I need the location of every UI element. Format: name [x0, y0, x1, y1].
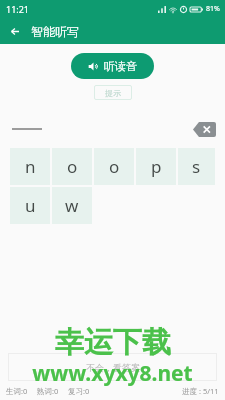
staticText: s: [192, 155, 201, 178]
button[interactable]: o: [52, 148, 92, 185]
staticText: o: [109, 155, 120, 178]
button[interactable]: 听读音: [71, 53, 154, 79]
button[interactable]: s: [178, 148, 215, 185]
staticText: 81%: [206, 4, 220, 14]
button[interactable]: Delete: [193, 122, 216, 137]
button[interactable]: 提示: [94, 85, 132, 100]
staticText: u: [25, 194, 36, 217]
staticText: 听读音: [104, 59, 137, 73]
button[interactable]: u: [10, 187, 50, 224]
button[interactable]: Back: [4, 20, 26, 42]
button[interactable]: p: [136, 148, 176, 185]
staticText: 11:21: [6, 3, 30, 15]
staticText: 幸运下载: [55, 324, 171, 361]
button[interactable]: n: [10, 148, 50, 185]
button[interactable]: w: [52, 187, 92, 224]
staticText: o: [67, 155, 78, 178]
staticText: n: [25, 155, 36, 178]
staticText: www.xyxy8.net: [32, 359, 193, 388]
staticText: 熟词:0: [37, 386, 59, 396]
staticText: 生词:0: [6, 386, 28, 396]
button[interactable]: o: [94, 148, 134, 185]
staticText: w: [65, 194, 79, 217]
staticText: 不会，看答案: [86, 362, 140, 373]
staticText: 提示: [105, 88, 121, 98]
staticText: p: [151, 155, 162, 178]
button[interactable]: 不会，看答案: [8, 353, 217, 381]
staticText: 复习:0: [68, 386, 90, 396]
staticText: 进度 : 5/11: [182, 386, 219, 396]
staticText: 智能听写: [31, 24, 79, 39]
